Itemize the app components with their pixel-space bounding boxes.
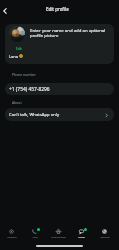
button[interactable]: Settings — [93, 228, 116, 241]
staticText: Can't talk, WhatsApp only — [9, 112, 104, 118]
button[interactable]: Back — [0, 5, 11, 17]
button[interactable]: Calls — [23, 228, 46, 241]
staticText: Settings — [100, 235, 110, 238]
button[interactable]: Change profile photo — [9, 26, 25, 42]
button[interactable]: +1 (754) 457-8296 — [5, 83, 114, 95]
staticText: Edit profile — [46, 6, 69, 12]
staticText: About — [12, 100, 22, 105]
staticText: Updates — [7, 235, 17, 238]
staticText: Calls — [32, 235, 38, 238]
button[interactable]: Chats — [70, 228, 93, 241]
button[interactable]: Updates — [0, 228, 23, 241]
staticText: Edit — [16, 47, 22, 51]
button[interactable]: Lana — [5, 49, 114, 63]
button[interactable]: Communities — [47, 228, 70, 241]
button[interactable]: Can't talk, WhatsApp only — [5, 108, 114, 121]
staticText: Lana — [9, 54, 18, 59]
staticText: Chats — [78, 235, 85, 238]
staticText: +1 (754) 457-8296 — [9, 86, 50, 93]
staticText: Enter your name and add an optional prof… — [30, 27, 110, 39]
staticText: Communities — [51, 235, 66, 238]
staticText: Phone number — [12, 72, 36, 77]
